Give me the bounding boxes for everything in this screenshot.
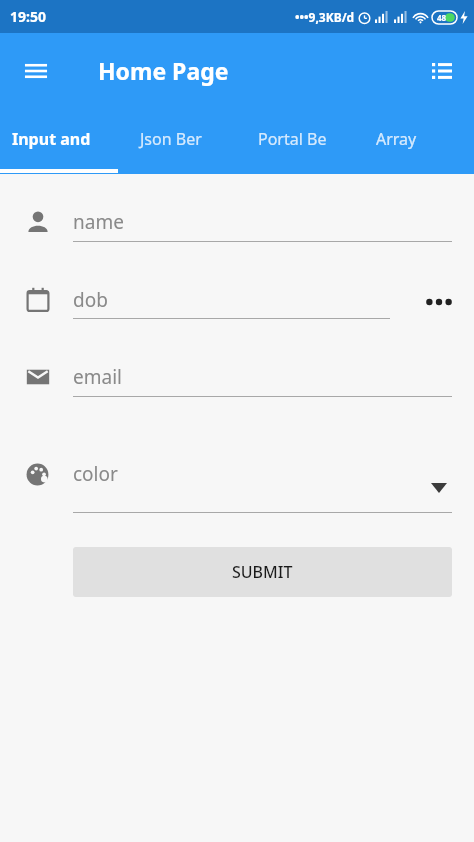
staticText: •••9,3KB/d xyxy=(295,9,355,25)
other: Open color dropdown xyxy=(431,483,447,493)
button[interactable]: Input and xyxy=(12,108,130,170)
button[interactable]: More options xyxy=(422,285,456,319)
staticText: 19:50 xyxy=(10,7,46,26)
button[interactable]: Email field xyxy=(73,356,373,398)
staticText: SUBMIT xyxy=(232,561,293,583)
staticText: email xyxy=(73,364,122,390)
other: More options xyxy=(426,298,452,306)
button[interactable]: Array xyxy=(376,108,474,170)
staticText: Input and xyxy=(12,128,91,150)
staticText: Home Page xyxy=(98,55,229,86)
button[interactable]: Date of birth field xyxy=(73,279,373,321)
button[interactable]: Open navigation drawer xyxy=(12,47,60,95)
staticText: name xyxy=(73,209,124,235)
staticText: dob xyxy=(73,287,108,313)
button[interactable]: Portal Be xyxy=(258,108,368,170)
button[interactable]: Color field xyxy=(73,453,373,495)
staticText: Array xyxy=(376,128,417,150)
button[interactable]: List options xyxy=(418,47,466,95)
staticText: color xyxy=(73,461,118,487)
staticText: 48 xyxy=(437,12,447,23)
staticText: Json Ber xyxy=(140,128,202,150)
button[interactable]: Json Ber xyxy=(140,108,250,170)
staticText: Portal Be xyxy=(258,128,327,150)
button[interactable]: Name field xyxy=(73,201,373,243)
button[interactable]: Open color dropdown xyxy=(422,471,456,505)
button[interactable]: SUBMIT xyxy=(73,547,452,597)
